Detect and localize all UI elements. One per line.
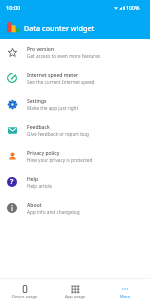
staticText: Feedback (27, 124, 50, 131)
staticText: 100% (126, 4, 140, 11)
button[interactable]: Device usage (0, 279, 50, 300)
staticText: Make the app just right (27, 105, 79, 111)
button[interactable]: Settings (0, 91, 150, 117)
staticText: 10:00 (6, 4, 21, 12)
staticText: Data counter widget (24, 23, 95, 33)
staticText: Settings (27, 98, 47, 105)
button[interactable]: Feedback (0, 117, 150, 143)
staticText: Internet speed meter (27, 72, 79, 79)
staticText: App info and changelog (27, 209, 80, 215)
staticText: See the current Internet speed (27, 79, 95, 85)
staticText: Privacy policy (27, 150, 60, 157)
staticText: How your privacy is protected (27, 157, 93, 163)
button[interactable]: App usage (50, 279, 100, 300)
staticText: Get access to even more features (27, 53, 101, 59)
button[interactable]: More (100, 279, 150, 300)
button[interactable]: Internet speed meter (0, 65, 150, 91)
button[interactable]: ? (0, 169, 150, 195)
button[interactable]: About (0, 195, 150, 221)
staticText: About (27, 202, 42, 209)
staticText: More (120, 294, 131, 300)
staticText: Pro version (27, 46, 55, 53)
staticText: Help (27, 176, 39, 183)
staticText: ? (10, 177, 14, 187)
button[interactable]: Pro version (0, 39, 150, 65)
staticText: App usage (65, 294, 86, 300)
staticText: Device usage (12, 294, 38, 300)
staticText: Give feedback or report bug (27, 131, 89, 137)
button[interactable]: Privacy policy (0, 143, 150, 169)
staticText: Help article (27, 183, 52, 189)
